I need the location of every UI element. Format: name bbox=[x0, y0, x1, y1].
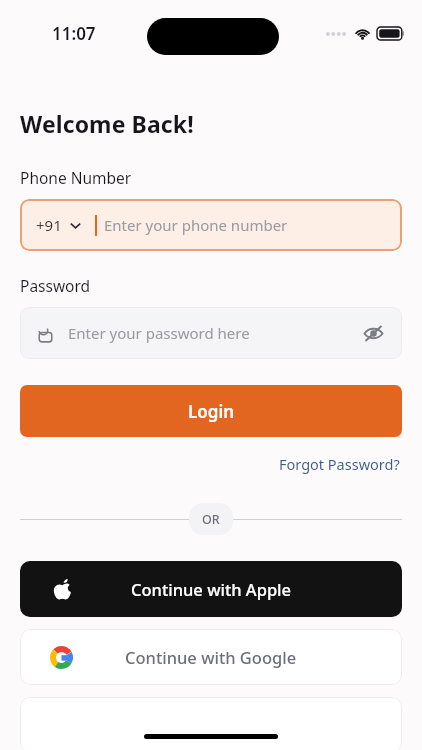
staticText: 11:07 bbox=[52, 22, 96, 45]
staticText: Password bbox=[20, 275, 91, 296]
button[interactable]: Login bbox=[20, 385, 402, 437]
staticText: OR bbox=[202, 511, 220, 528]
staticText: Phone Number bbox=[20, 167, 132, 188]
button[interactable]: Forgot Password? bbox=[277, 451, 402, 477]
staticText: Welcome Back! bbox=[20, 108, 194, 139]
button[interactable]: Show password bbox=[360, 320, 386, 346]
staticText: Enter your phone number bbox=[104, 215, 288, 235]
button[interactable]: +91 bbox=[20, 199, 402, 251]
button[interactable] bbox=[20, 697, 402, 750]
button[interactable]: Continue with Apple bbox=[20, 561, 402, 617]
button[interactable]: Continue with Google bbox=[20, 629, 402, 685]
staticText: Continue with Google bbox=[125, 646, 297, 668]
staticText: Continue with Apple bbox=[131, 578, 292, 600]
staticText: Enter your password here bbox=[68, 323, 250, 343]
staticText: Login bbox=[188, 400, 235, 423]
button[interactable]: Enter your password here bbox=[20, 307, 402, 359]
staticText: +91 bbox=[36, 215, 62, 235]
